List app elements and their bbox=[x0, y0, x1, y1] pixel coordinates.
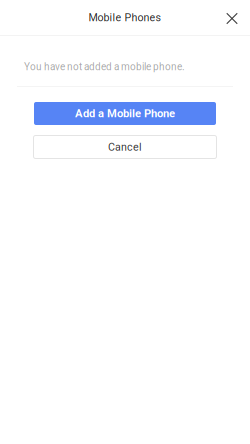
button[interactable]: Close bbox=[219, 5, 245, 31]
button[interactable]: Cancel bbox=[34, 135, 216, 159]
staticText: Add a Mobile Phone bbox=[75, 107, 175, 120]
staticText: You have not added a mobile phone. bbox=[24, 61, 185, 73]
staticText: Mobile Phones bbox=[88, 11, 161, 24]
button[interactable]: Add a Mobile Phone bbox=[34, 102, 216, 125]
staticText: Cancel bbox=[108, 141, 142, 153]
